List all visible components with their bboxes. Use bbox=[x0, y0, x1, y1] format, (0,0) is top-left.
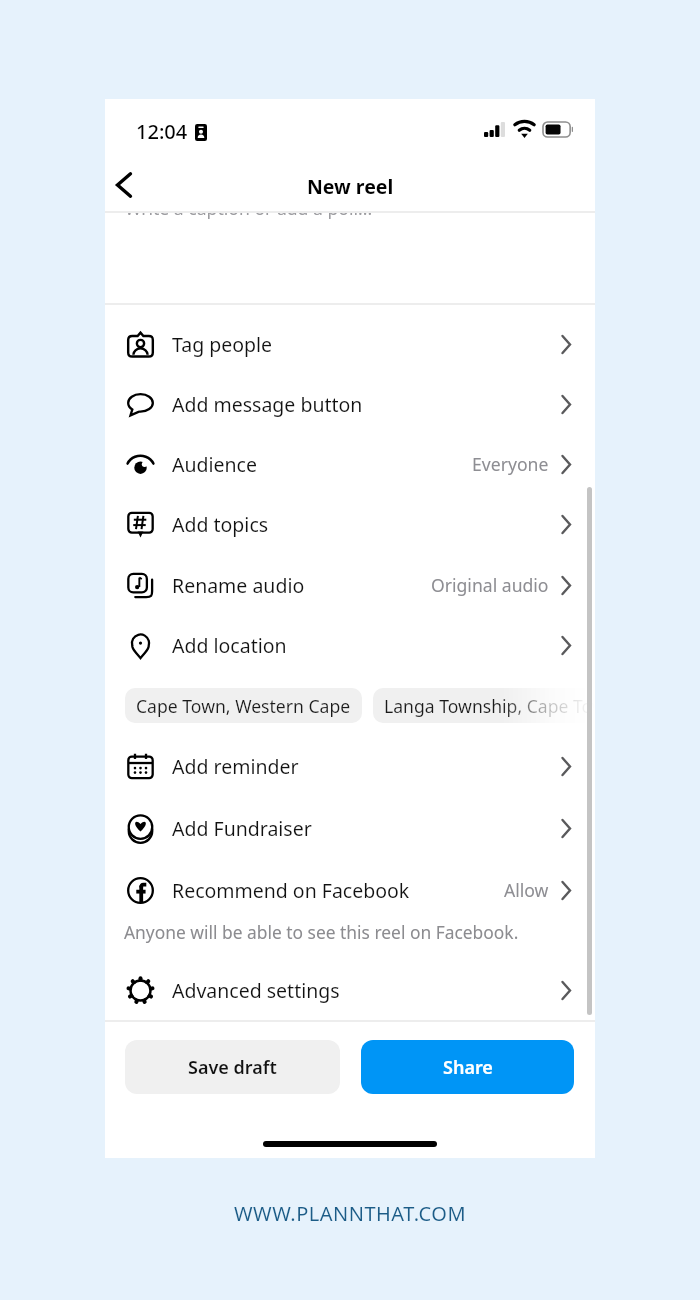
staticText: Add topics bbox=[172, 511, 269, 538]
button[interactable]: Share bbox=[361, 1040, 574, 1094]
staticText: 12:04 bbox=[136, 118, 188, 145]
staticText: Cape Town, Western Cape bbox=[136, 694, 351, 718]
button[interactable]: Tag people bbox=[105, 314, 595, 374]
button[interactable]: Cape Town, Western Cape bbox=[125, 688, 362, 723]
button[interactable]: Add topics bbox=[105, 494, 595, 554]
button[interactable]: Save draft bbox=[125, 1040, 340, 1094]
button[interactable]: Advanced settings bbox=[105, 960, 595, 1020]
staticText: New reel bbox=[307, 173, 394, 200]
staticText: Allow bbox=[504, 878, 549, 902]
staticText: Add Fundraiser bbox=[172, 815, 312, 842]
staticText: Add message button bbox=[172, 391, 363, 418]
staticText: Share bbox=[443, 1055, 493, 1080]
staticText: Add location bbox=[172, 632, 287, 659]
button[interactable]: Recommend on Facebook bbox=[105, 860, 595, 920]
button[interactable]: Add message button bbox=[105, 374, 595, 434]
button[interactable]: Add Fundraiser bbox=[105, 798, 595, 858]
staticText: Add reminder bbox=[172, 753, 299, 780]
staticText: Everyone bbox=[472, 452, 549, 476]
staticText: Save draft bbox=[188, 1055, 277, 1080]
button[interactable]: Add location bbox=[105, 615, 595, 675]
button[interactable]: Langa Township, Cape Town bbox=[373, 688, 595, 723]
staticText: Anyone will be able to see this reel on … bbox=[124, 920, 519, 944]
staticText: Langa Township, Cape Town bbox=[384, 694, 595, 718]
button[interactable]: Audience bbox=[105, 434, 595, 494]
staticText: Tag people bbox=[172, 331, 273, 358]
staticText: Original audio bbox=[431, 573, 549, 597]
staticText: WWW.PLANNTHAT.COM bbox=[234, 1200, 467, 1227]
button[interactable]: Add reminder bbox=[105, 736, 595, 796]
staticText: Audience bbox=[172, 451, 257, 478]
button[interactable]: Back bbox=[105, 160, 149, 210]
staticText: Rename audio bbox=[172, 572, 305, 599]
button[interactable]: Rename audio bbox=[105, 555, 595, 615]
staticText: Recommend on Facebook bbox=[172, 877, 410, 904]
staticText: Advanced settings bbox=[172, 977, 340, 1004]
staticText: Write a caption or add a poll... bbox=[125, 196, 373, 220]
